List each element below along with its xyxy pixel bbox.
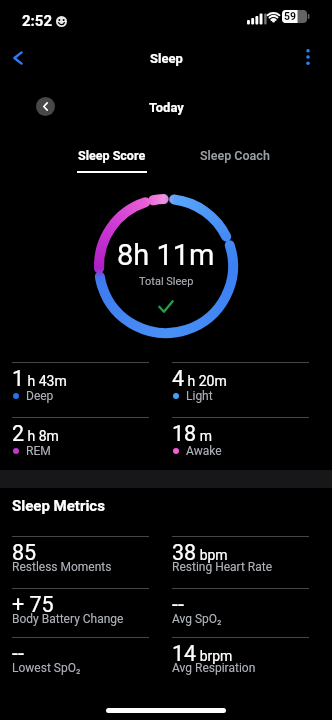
- staticText: 14 brpm: [172, 641, 233, 666]
- staticText: 4 h 20m: [172, 366, 227, 391]
- button[interactable]: 1 h 43m: [12, 362, 149, 417]
- staticText: 2 h 8m: [12, 421, 59, 446]
- staticText: Resting Heart Rate: [172, 560, 273, 574]
- staticText: Sleep: [150, 51, 183, 66]
- staticText: 38 bpm: [172, 540, 228, 565]
- staticText: 1 h 43m: [12, 366, 67, 391]
- staticText: Avg Respiration: [172, 661, 256, 675]
- button[interactable]: 14 brpm: [172, 637, 309, 687]
- staticText: 85: [12, 540, 37, 565]
- button[interactable]: --: [12, 637, 149, 687]
- staticText: Deep: [26, 389, 54, 403]
- staticText: --: [12, 641, 24, 666]
- staticText: Today: [149, 100, 184, 115]
- staticText: 2:52: [22, 12, 53, 30]
- button[interactable]: 38 bpm: [172, 536, 309, 588]
- button[interactable]: 4 h 20m: [172, 362, 309, 417]
- staticText: Total Sleep: [139, 275, 194, 288]
- staticText: Sleep Metrics: [12, 497, 105, 515]
- button[interactable]: Sleep Coach: [197, 145, 273, 166]
- button[interactable]: [2, 42, 34, 74]
- staticText: Avg SpO₂: [172, 612, 222, 626]
- staticText: Awake: [186, 444, 222, 458]
- staticText: 18 m: [172, 421, 212, 446]
- button[interactable]: 18 m: [172, 417, 309, 470]
- staticText: REM: [26, 444, 51, 458]
- staticText: Sleep Coach: [200, 148, 270, 163]
- button[interactable]: [36, 97, 55, 116]
- staticText: Light: [186, 389, 213, 403]
- button[interactable]: Sleep Score: [77, 148, 147, 173]
- staticText: Body Battery Change: [12, 612, 124, 626]
- staticText: Sleep Score: [78, 148, 146, 163]
- staticText: --: [172, 592, 184, 617]
- button[interactable]: + 75: [12, 588, 149, 637]
- staticText: 59: [284, 10, 297, 22]
- button[interactable]: [294, 43, 322, 71]
- button[interactable]: --: [172, 588, 309, 637]
- staticText: 8h 11m: [117, 238, 215, 272]
- staticText: + 75: [12, 592, 54, 617]
- button[interactable]: 2 h 8m: [12, 417, 149, 470]
- button[interactable]: 85: [12, 536, 149, 588]
- staticText: Lowest SpO₂: [12, 661, 81, 675]
- staticText: Restless Moments: [12, 560, 112, 574]
